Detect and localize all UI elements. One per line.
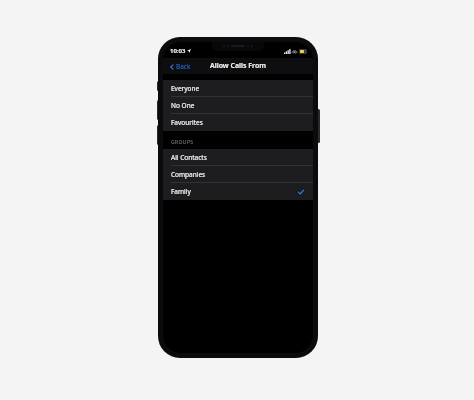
staticText: Family bbox=[171, 187, 297, 196]
button[interactable]: No One bbox=[163, 97, 313, 114]
button[interactable]: Back bbox=[167, 60, 193, 73]
button[interactable]: Companies bbox=[163, 166, 313, 183]
staticText: Back bbox=[176, 62, 191, 71]
staticText: Everyone bbox=[171, 84, 305, 93]
button[interactable]: Favourites bbox=[163, 114, 313, 131]
staticText: Favourites bbox=[171, 118, 305, 127]
button[interactable]: All Contacts bbox=[163, 149, 313, 166]
button[interactable]: Family bbox=[163, 183, 313, 200]
button[interactable]: Everyone bbox=[163, 80, 313, 97]
staticText: All Contacts bbox=[171, 153, 305, 162]
staticText: Companies bbox=[171, 170, 305, 179]
staticText: GROUPS bbox=[171, 139, 194, 146]
staticText: 10:03 bbox=[170, 47, 186, 55]
staticText: Allow Calls From bbox=[210, 61, 266, 71]
staticText: No One bbox=[171, 101, 305, 110]
